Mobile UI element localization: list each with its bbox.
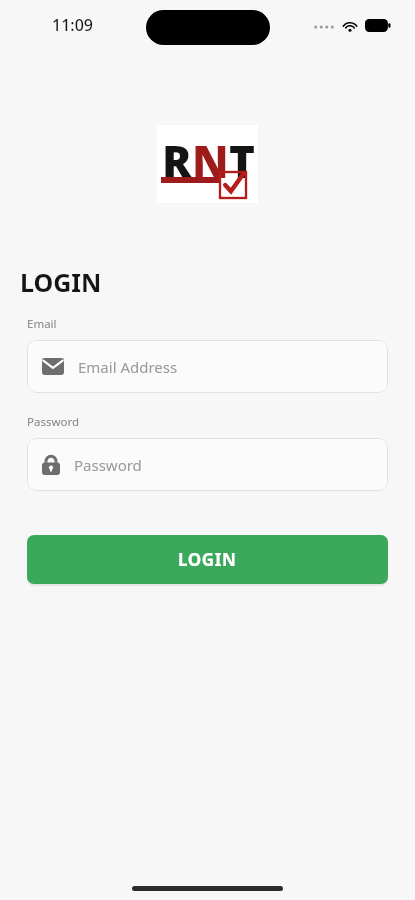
staticText: 11:09 bbox=[52, 14, 93, 36]
button[interactable]: Email Address bbox=[27, 340, 388, 393]
staticText: Password bbox=[27, 414, 80, 430]
staticText: Email bbox=[27, 316, 57, 332]
staticText: LOGIN bbox=[20, 265, 102, 299]
staticText: Email Address bbox=[78, 357, 178, 377]
staticText: N bbox=[192, 131, 229, 191]
button[interactable]: Password bbox=[27, 438, 388, 491]
staticText: R bbox=[162, 131, 192, 191]
button[interactable]: LOGIN bbox=[27, 535, 388, 584]
staticText: LOGIN bbox=[178, 548, 237, 571]
staticText: Password bbox=[74, 455, 142, 475]
staticText: T bbox=[229, 131, 256, 191]
